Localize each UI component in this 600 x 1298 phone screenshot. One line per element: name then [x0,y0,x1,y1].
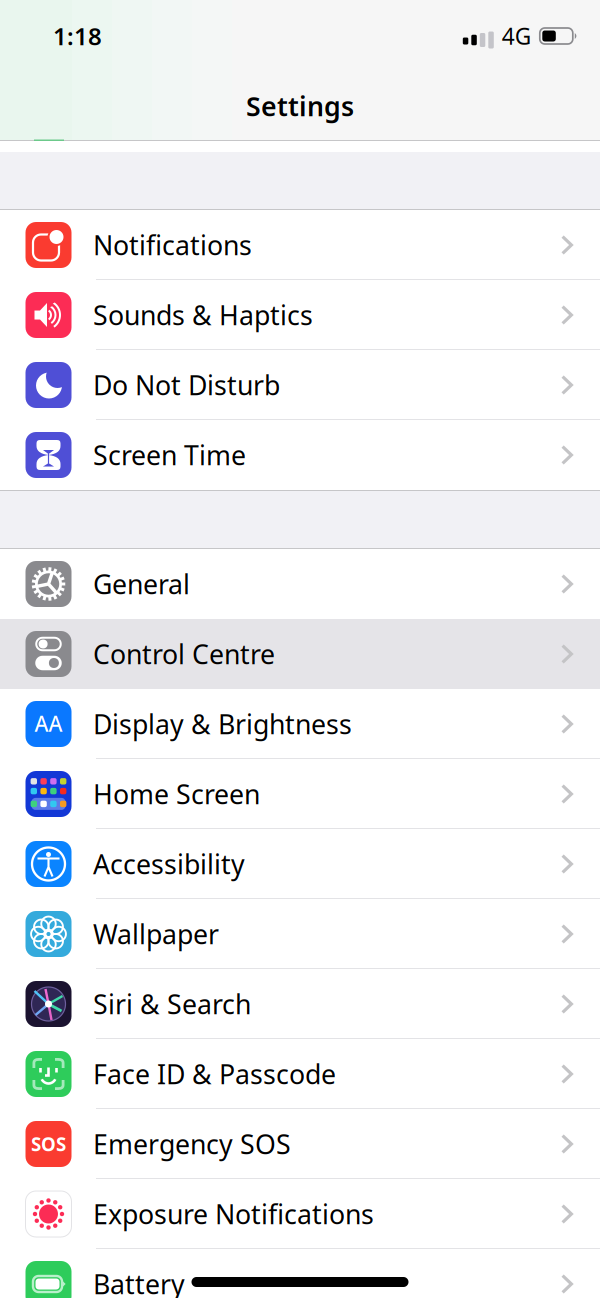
button[interactable]: Control Centre [0,619,600,689]
button[interactable]: AA [0,689,600,759]
staticText: Do Not Disturb [93,367,280,403]
button[interactable]: Exposure Notifications [0,1179,600,1249]
button[interactable]: Notifications [0,210,600,280]
staticText: Accessibility [93,846,245,882]
staticText: Siri & Search [93,986,251,1022]
staticText: Notifications [93,227,252,263]
staticText: Emergency SOS [93,1126,291,1162]
staticText: Settings [246,88,354,124]
staticText: Sounds & Haptics [93,297,313,333]
staticText: Exposure Notifications [93,1196,374,1232]
staticText: Wallpaper [93,916,219,952]
staticText: Screen Time [93,437,246,473]
staticText: Control Centre [93,636,275,672]
button[interactable]: Battery [0,1249,600,1298]
button[interactable]: Screen Time [0,420,600,490]
button[interactable]: General [0,549,600,619]
staticText: 4G [502,21,532,51]
button[interactable]: Home Screen [0,759,600,829]
button[interactable]: Wallpaper [0,899,600,969]
staticText: Face ID & Passcode [93,1056,336,1092]
staticText: 1:18 [53,20,102,52]
staticText: AA [34,709,62,738]
staticText: SOS [31,1132,66,1156]
staticText: Display & Brightness [93,706,352,742]
staticText: General [93,566,190,602]
button[interactable]: Accessibility [0,829,600,899]
button[interactable]: SOS [0,1109,600,1179]
button[interactable]: Face ID & Passcode [0,1039,600,1109]
button[interactable]: Do Not Disturb [0,350,600,420]
button[interactable]: Siri & Search [0,969,600,1039]
staticText: Home Screen [93,776,260,812]
button[interactable]: Sounds & Haptics [0,280,600,350]
staticText: Battery [93,1266,185,1298]
